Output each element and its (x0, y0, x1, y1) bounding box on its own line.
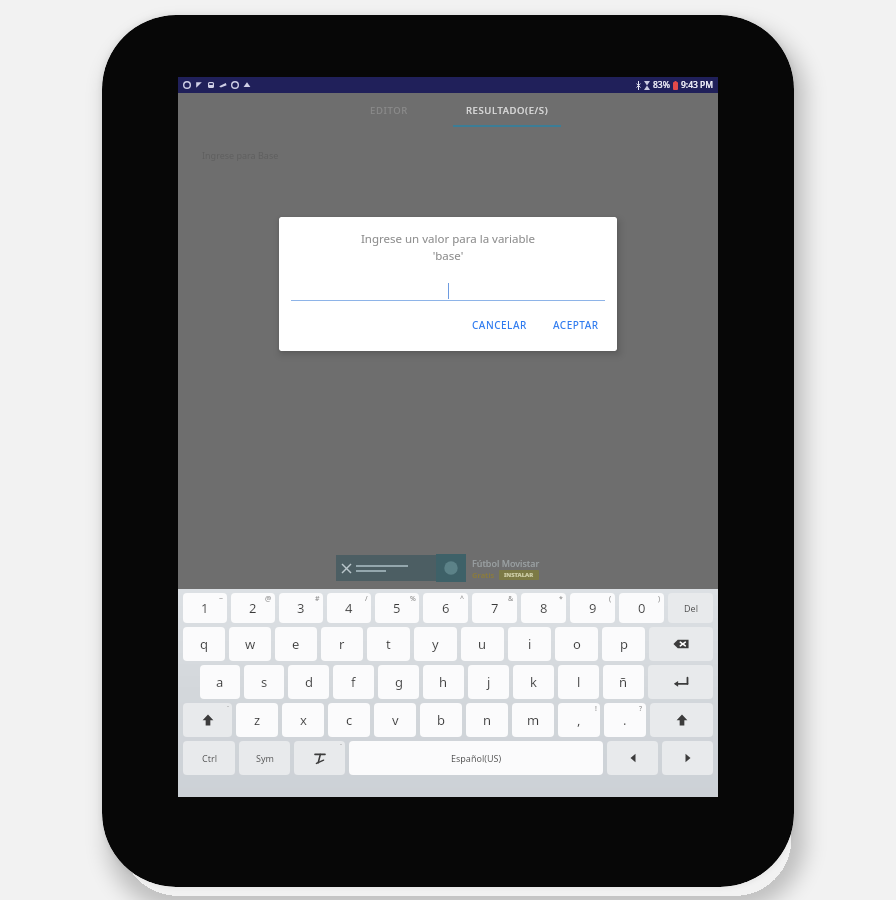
staticText: x (300, 711, 307, 729)
staticText: t (386, 635, 391, 653)
button[interactable]: Fútbol Movistar (336, 553, 560, 583)
staticText: ñ (619, 673, 628, 691)
staticText: INSTALAR (504, 571, 534, 579)
button[interactable]: o (555, 627, 598, 661)
button[interactable]: p (602, 627, 645, 661)
button[interactable]: ACEPTAR (547, 315, 605, 335)
staticText: ~ (219, 594, 224, 604)
staticText: # (315, 594, 320, 604)
button[interactable]: r (321, 627, 363, 661)
staticText: 5 (393, 599, 401, 617)
staticText: 8 (540, 599, 548, 617)
button[interactable]: e (275, 627, 317, 661)
button[interactable]: Enter (648, 665, 713, 699)
button[interactable]: Move cursor right (662, 741, 713, 775)
staticText: h (439, 673, 448, 691)
button[interactable]: 8 (521, 593, 566, 623)
staticText: 6 (442, 599, 450, 617)
staticText: y (432, 635, 439, 653)
button[interactable]: CANCELAR (466, 315, 533, 335)
button[interactable]: Backspace (649, 627, 713, 661)
button[interactable]: ñ (603, 665, 644, 699)
staticText: RESULTADO(E/S) (466, 104, 549, 117)
button[interactable]: EDITOR (330, 93, 448, 127)
button[interactable]: y (414, 627, 457, 661)
button[interactable]: k (513, 665, 554, 699)
staticText: p (620, 635, 628, 653)
staticText: @ (265, 594, 272, 604)
button[interactable]: t (367, 627, 410, 661)
staticText: e (292, 635, 300, 653)
staticText: Gratis (472, 570, 495, 580)
button[interactable]: 5 (375, 593, 419, 623)
button[interactable]: 7 (472, 593, 517, 623)
button[interactable]: x (282, 703, 324, 737)
button[interactable]: Del (668, 593, 713, 623)
button[interactable]: h (423, 665, 464, 699)
button[interactable]: f (333, 665, 374, 699)
button[interactable]: l (558, 665, 599, 699)
button[interactable]: Shift (650, 703, 713, 737)
staticText: Ingrese un valor para la variable 'base' (291, 231, 605, 263)
button[interactable]: z (236, 703, 278, 737)
staticText: & (508, 594, 514, 604)
button[interactable]: 4 (327, 593, 371, 623)
staticText: ACEPTAR (553, 318, 599, 332)
button[interactable]: Move cursor left (607, 741, 658, 775)
button[interactable]: c (328, 703, 370, 737)
button[interactable]: Shift (183, 703, 232, 737)
staticText: Sym (256, 752, 274, 764)
staticText: Ingrese para Base (202, 149, 279, 161)
button[interactable]: Ctrl (183, 741, 235, 775)
staticText: m (527, 711, 540, 729)
button[interactable]: 0 (619, 593, 664, 623)
button[interactable]: 3 (279, 593, 323, 623)
staticText: ) (658, 594, 661, 604)
button[interactable]: q (183, 627, 225, 661)
staticText: w (245, 635, 256, 653)
staticText: c (346, 711, 353, 729)
button[interactable]: RESULTADO(E/S) (448, 93, 566, 127)
staticText: ( (609, 594, 612, 604)
staticText: ? (639, 704, 643, 714)
staticText: , (577, 711, 581, 729)
staticText: Del (684, 602, 698, 614)
button[interactable]: , (558, 703, 600, 737)
staticText: a (216, 673, 224, 691)
button[interactable]: b (420, 703, 462, 737)
staticText: ^ (460, 594, 465, 604)
button[interactable]: Handwriting input (294, 741, 345, 775)
button[interactable]: 9 (570, 593, 615, 623)
staticText: . (623, 711, 627, 729)
staticText: r (339, 635, 345, 653)
button[interactable]: a (200, 665, 240, 699)
staticText: f (351, 673, 356, 691)
button[interactable]: 2 (231, 593, 275, 623)
button[interactable]: u (461, 627, 504, 661)
button[interactable]: m (512, 703, 554, 737)
button[interactable]: v (374, 703, 416, 737)
button[interactable]: g (378, 665, 419, 699)
button[interactable]: j (468, 665, 509, 699)
staticText: o (573, 635, 581, 653)
staticText: j (487, 673, 491, 691)
staticText: 83% (653, 79, 670, 91)
staticText: ` (340, 742, 342, 752)
staticText: ` (227, 704, 229, 714)
button[interactable]: 1 (183, 593, 227, 623)
button[interactable]: Sym (239, 741, 290, 775)
staticText: 1 (201, 599, 209, 617)
button[interactable]: s (244, 665, 284, 699)
staticText: n (483, 711, 492, 729)
button[interactable]: i (508, 627, 551, 661)
staticText: d (305, 673, 313, 691)
button[interactable]: 6 (423, 593, 468, 623)
button[interactable]: n (466, 703, 508, 737)
button[interactable]: d (288, 665, 329, 699)
button[interactable]: Español(US) (349, 741, 603, 775)
button[interactable]: . (604, 703, 646, 737)
staticText: CANCELAR (472, 318, 527, 332)
staticText: / (365, 594, 368, 604)
button[interactable]: w (229, 627, 271, 661)
staticText: ! (595, 704, 597, 714)
